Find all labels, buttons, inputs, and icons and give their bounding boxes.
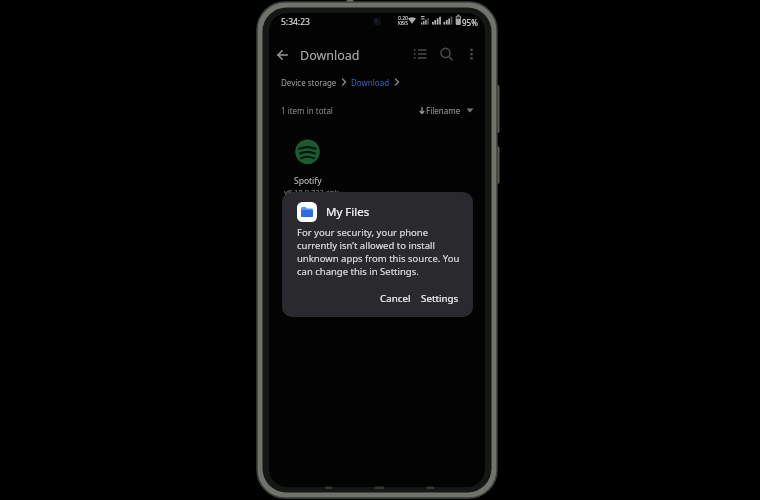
staticText: Download bbox=[300, 47, 360, 64]
staticText: Spotify bbox=[294, 175, 322, 187]
staticText: Device storage bbox=[281, 77, 337, 88]
staticText: Cancel bbox=[380, 292, 411, 305]
button[interactable] bbox=[410, 44, 430, 64]
staticText: Download bbox=[351, 77, 390, 88]
button[interactable] bbox=[272, 44, 294, 66]
staticText: 0.20 bbox=[398, 15, 408, 22]
button[interactable]: Filename bbox=[418, 103, 474, 117]
staticText: My Files bbox=[326, 204, 370, 220]
staticText: 1 item in total bbox=[281, 105, 333, 116]
staticText: 95% bbox=[462, 17, 478, 28]
staticText: Filename bbox=[426, 105, 461, 116]
button[interactable]: Download bbox=[351, 77, 390, 88]
staticText: KB/S bbox=[398, 20, 408, 26]
button[interactable]: Device storage bbox=[281, 77, 337, 88]
staticText: 5:34:23 bbox=[281, 16, 310, 28]
button[interactable]: Cancel bbox=[377, 288, 414, 309]
staticText: v8.10.9.722 apk bbox=[284, 187, 339, 197]
button[interactable] bbox=[283, 135, 331, 195]
staticText: For your security, your phone currently … bbox=[297, 226, 460, 278]
staticText: Settings bbox=[421, 292, 459, 305]
button[interactable] bbox=[436, 44, 456, 64]
button[interactable]: Settings bbox=[416, 288, 464, 309]
button[interactable] bbox=[463, 44, 480, 64]
